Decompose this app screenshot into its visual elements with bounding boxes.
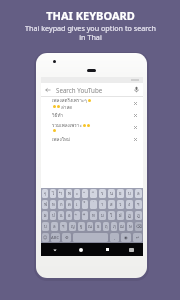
staticText: ท [92, 212, 95, 219]
staticText: ๆ [44, 190, 47, 197]
button[interactable]: เพลงใหม่ [41, 133, 143, 145]
button[interactable]: เพลงสตริงเพราะๆ [41, 97, 143, 109]
button[interactable]: ๆ [42, 189, 48, 198]
button[interactable]: ฐ [78, 222, 85, 231]
button[interactable]: ◉ [121, 233, 131, 242]
staticText: ญ [71, 223, 75, 230]
staticText: , [114, 235, 116, 241]
button[interactable]: ง [126, 200, 133, 209]
button[interactable]: ธ [95, 222, 101, 231]
staticText: ไ [52, 190, 55, 197]
button[interactable]: ฏ [126, 211, 133, 220]
button[interactable]: Hide keyboard [41, 243, 68, 256]
staticText: ↵ [136, 235, 140, 240]
button[interactable]: Back [44, 86, 52, 94]
button[interactable]: ↵ [133, 233, 142, 242]
button[interactable]: ก [58, 200, 64, 209]
button[interactable]: , [110, 233, 119, 242]
button[interactable]: า [99, 200, 106, 209]
button[interactable]: Remove suggestion [130, 98, 140, 108]
button[interactable]: บ [42, 222, 49, 231]
staticText: ร [101, 190, 104, 197]
button[interactable]: ฦ [111, 222, 117, 231]
button[interactable]: ☺ [42, 233, 49, 242]
button[interactable]: ษ [127, 222, 133, 231]
button[interactable]: ่ [90, 200, 97, 209]
button[interactable]: ⌫ [135, 222, 142, 231]
staticText: รวมเพลงเพราะ [52, 122, 82, 129]
button[interactable]: ฌ [119, 222, 125, 231]
button[interactable]: Recents [94, 243, 120, 256]
button[interactable]: ฟ [42, 200, 48, 209]
staticText: ฯ [137, 201, 140, 208]
button[interactable]: รวมเพลงเพราะ [41, 121, 143, 133]
button[interactable]: Voice search [132, 85, 141, 94]
staticText: ล [53, 223, 56, 230]
button[interactable]: ี [90, 189, 97, 198]
staticText: ป [52, 212, 55, 219]
button[interactable]: ะ [74, 189, 80, 198]
button[interactable]: ส [108, 200, 115, 209]
staticText: ผ [44, 212, 47, 219]
button[interactable]: Remove suggestion [130, 122, 140, 132]
button[interactable]: บ [126, 189, 133, 198]
button[interactable]: ้ [82, 200, 88, 209]
staticText: ม [101, 212, 104, 219]
staticText: Search YouTube [56, 86, 103, 94]
staticText: ฌ [120, 223, 124, 230]
button[interactable]: ⚙ [62, 233, 71, 242]
button[interactable]: ณ [87, 222, 93, 231]
button[interactable]: ว [117, 200, 124, 209]
button[interactable]: ย [117, 189, 124, 198]
staticText: แ [60, 212, 63, 219]
button[interactable]: ฯ [60, 222, 67, 231]
button[interactable]: ำ [58, 189, 64, 198]
staticText: เ [76, 201, 78, 208]
staticText: ฦ [113, 223, 116, 230]
button[interactable]: ิ [74, 211, 80, 220]
button[interactable]: ร [99, 189, 106, 198]
button[interactable]: Remove suggestion [130, 110, 140, 120]
staticText: ◉ [124, 235, 128, 240]
button[interactable]: ฤ [103, 222, 109, 231]
button[interactable]: ื [82, 211, 88, 220]
staticText: ⚙ [65, 235, 69, 240]
button[interactable]: ห [50, 200, 56, 209]
button[interactable]: Home [68, 243, 94, 256]
staticText: ก [60, 201, 63, 208]
button[interactable]: ด [66, 200, 72, 209]
button[interactable]: ฝ [117, 211, 124, 220]
button[interactable]: ผ [42, 211, 48, 220]
staticText: ว [119, 201, 122, 208]
staticText: เพลงสตริงเพราะๆ [52, 97, 87, 104]
button[interactable]: วิธีทำ [41, 109, 143, 121]
button[interactable]: ล [135, 189, 142, 198]
button[interactable]: ท [90, 211, 97, 220]
staticText: ด [68, 201, 71, 208]
staticText: พ [68, 190, 71, 197]
staticText: ฎ [137, 212, 140, 219]
button[interactable]: ฯ [135, 200, 142, 209]
button[interactable]: ญ [69, 222, 76, 231]
button[interactable]: ป [50, 211, 56, 220]
button[interactable]: อ [66, 211, 72, 220]
button[interactable]: ั [82, 189, 88, 198]
button[interactable]: Remove suggestion [130, 134, 140, 144]
button[interactable]: ABC [51, 233, 60, 242]
staticText: า [101, 201, 104, 208]
button[interactable]: ใ [108, 211, 115, 220]
button[interactable]: Back [41, 83, 143, 96]
button[interactable]: ล [51, 222, 58, 231]
staticText: ฟ [44, 201, 47, 208]
staticText: ฯ [62, 223, 65, 230]
button[interactable]: Switch keyboard [120, 243, 143, 256]
button[interactable]: ม [99, 211, 106, 220]
button[interactable]: น [108, 189, 115, 198]
staticText: ฤ [105, 223, 108, 230]
button[interactable]: เ [74, 200, 80, 209]
button[interactable]: แ [58, 211, 64, 220]
button[interactable]: พ [66, 189, 72, 198]
button[interactable]: ฎ [135, 211, 142, 220]
button[interactable]: ไ [50, 189, 56, 198]
